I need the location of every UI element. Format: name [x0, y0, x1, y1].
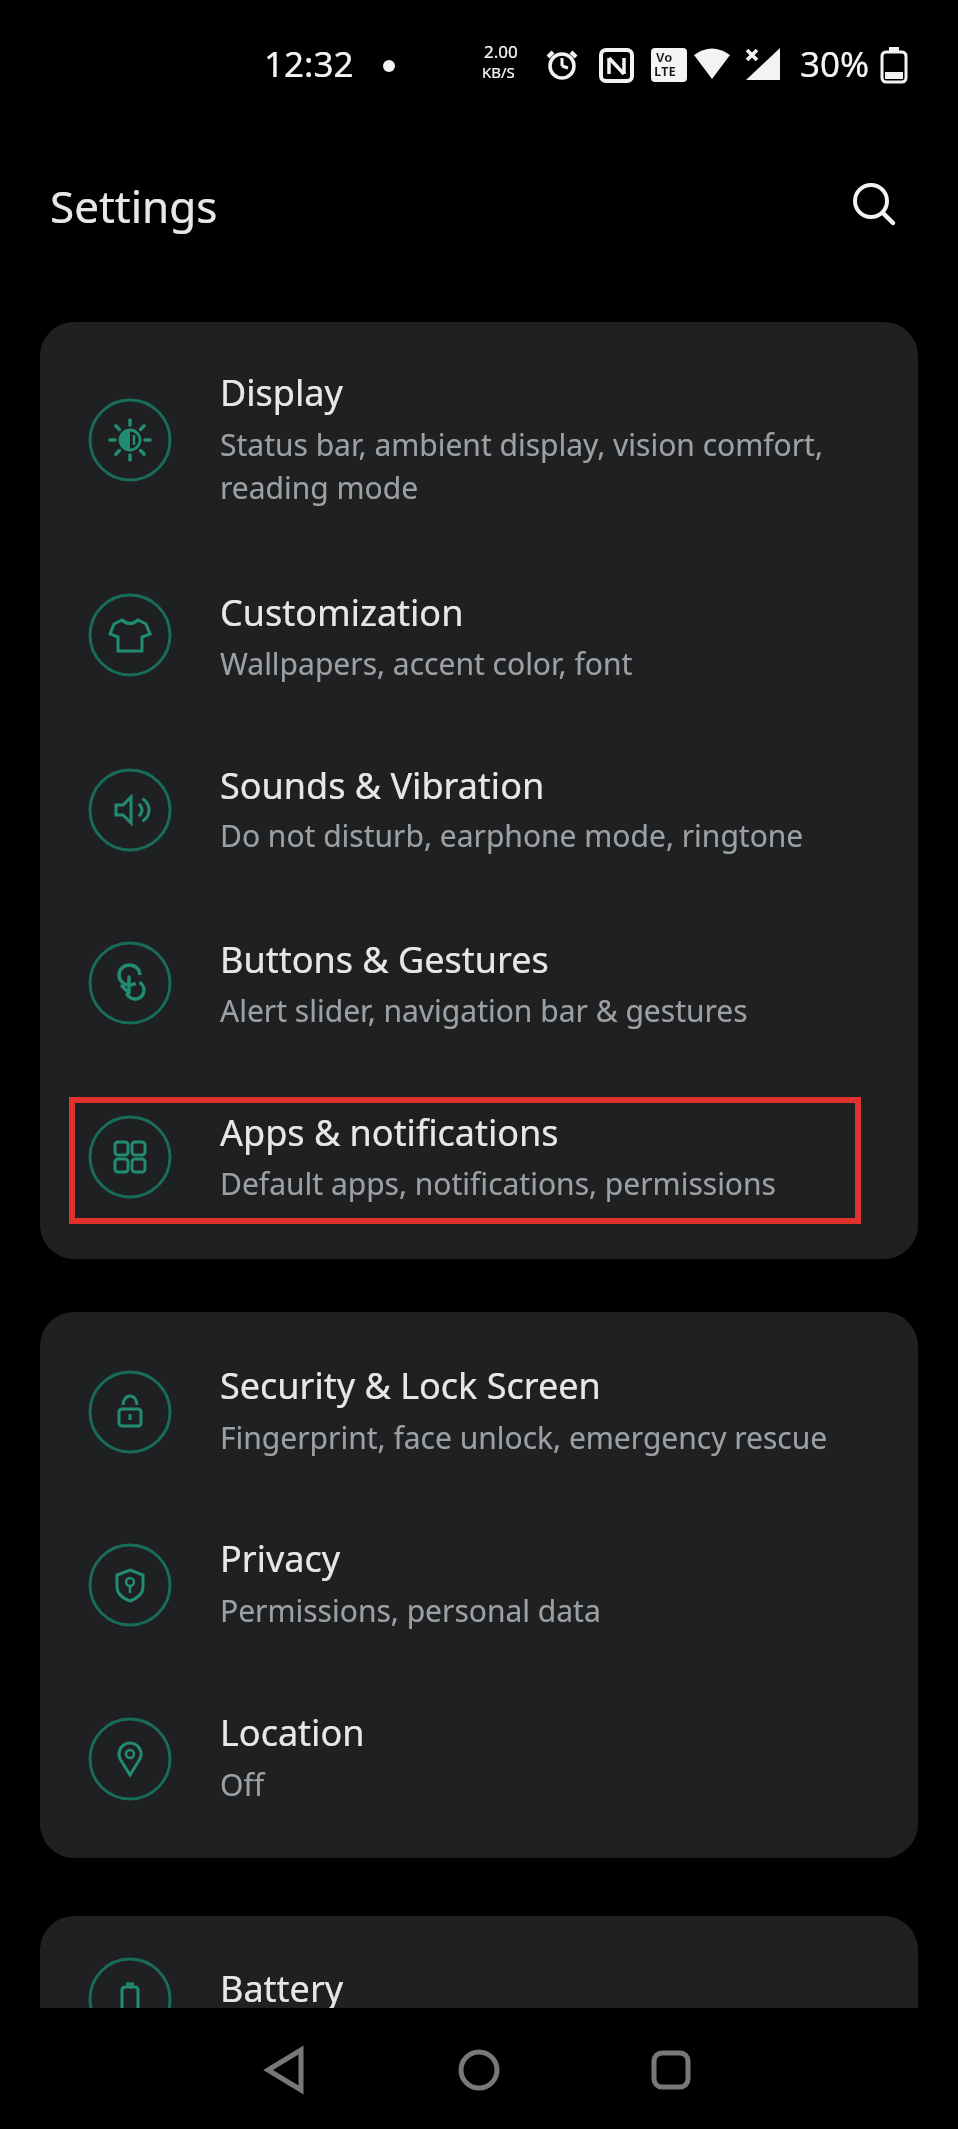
staticText: Default apps, notifications, permissions	[220, 1163, 776, 1204]
staticText: Apps & notifications	[220, 1108, 559, 1157]
staticText: Vo	[656, 48, 673, 66]
staticText: LTE	[654, 62, 676, 80]
staticText: Alert slider, navigation bar & gestures	[220, 990, 748, 1031]
staticText: 30%	[800, 40, 870, 88]
staticText: 12:32	[264, 40, 354, 88]
staticText: reading mode	[220, 467, 419, 508]
staticText: Do not disturb, earphone mode, ringtone	[220, 815, 804, 856]
button[interactable]	[429, 2020, 529, 2120]
staticText: Sounds & Vibration	[220, 761, 545, 810]
staticText: Security & Lock Screen	[220, 1361, 601, 1410]
staticText: Privacy	[220, 1534, 341, 1583]
button[interactable]: Battery	[40, 1916, 918, 2008]
button[interactable]	[621, 2020, 721, 2120]
staticText: Settings	[50, 176, 218, 236]
staticText: Status bar, ambient display, vision comf…	[220, 424, 823, 465]
staticText: Battery	[220, 1964, 344, 2008]
staticText: Location	[220, 1708, 365, 1757]
button[interactable]: Privacy	[40, 1499, 918, 1673]
button[interactable]: Sounds & Vibration	[40, 722, 918, 896]
staticText: Customization	[220, 588, 464, 637]
staticText: Fingerprint, face unlock, emergency resc…	[220, 1417, 828, 1458]
staticText: KB/S	[482, 62, 515, 82]
staticText: Buttons & Gestures	[220, 935, 549, 984]
staticText: 2.00	[484, 40, 518, 63]
button[interactable]: Buttons & Gestures	[40, 896, 918, 1070]
button[interactable]: Security & Lock Screen	[40, 1325, 918, 1499]
staticText: Wallpapers, accent color, font	[220, 643, 633, 684]
button[interactable]: Apps & notifications	[40, 1070, 918, 1259]
staticText: Permissions, personal data	[220, 1590, 601, 1631]
button[interactable]: Customization	[40, 538, 918, 722]
button[interactable]	[840, 168, 910, 238]
button[interactable]: Display	[40, 322, 918, 538]
button[interactable]	[237, 2020, 337, 2120]
button[interactable]: Location	[40, 1673, 918, 1847]
staticText: Display	[220, 368, 343, 417]
staticText: Off	[220, 1764, 265, 1805]
